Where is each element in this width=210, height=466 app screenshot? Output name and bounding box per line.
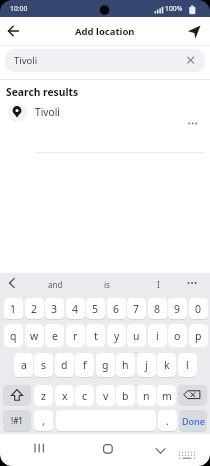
button[interactable] bbox=[176, 446, 198, 464]
staticText: Done bbox=[182, 415, 205, 427]
staticText: 5 bbox=[92, 302, 99, 316]
button[interactable]: m bbox=[157, 385, 176, 406]
staticText: m bbox=[162, 389, 172, 403]
staticText: u bbox=[133, 329, 140, 343]
staticText: 1 bbox=[10, 302, 17, 316]
button[interactable]: is bbox=[84, 274, 130, 294]
staticText: f bbox=[83, 358, 87, 372]
button[interactable]: a bbox=[14, 353, 33, 377]
staticText: s bbox=[41, 358, 47, 372]
staticText: w bbox=[30, 329, 39, 343]
button[interactable]: n bbox=[137, 385, 156, 406]
button[interactable]: d bbox=[55, 353, 74, 377]
button[interactable]: j bbox=[137, 353, 156, 377]
staticText: 10:00 bbox=[10, 4, 28, 13]
staticText: 0 bbox=[195, 302, 202, 316]
button[interactable] bbox=[96, 436, 120, 460]
button[interactable]: !#1 bbox=[3, 410, 31, 431]
button[interactable]: and bbox=[26, 274, 84, 294]
staticText: and bbox=[48, 279, 63, 290]
staticText: n bbox=[143, 389, 150, 403]
button[interactable]: s bbox=[34, 353, 53, 377]
staticText: !#1 bbox=[11, 415, 23, 426]
button[interactable]: Tivoli bbox=[0, 101, 210, 131]
button[interactable]: 3 bbox=[45, 298, 64, 319]
button[interactable]: w bbox=[25, 324, 44, 347]
button[interactable]: y bbox=[107, 324, 126, 347]
staticText: Add location bbox=[75, 25, 135, 38]
staticText: Tivoli bbox=[14, 54, 38, 67]
button[interactable] bbox=[178, 385, 207, 406]
button[interactable]: 7 bbox=[127, 298, 146, 319]
button[interactable] bbox=[2, 275, 20, 293]
button[interactable]: 8 bbox=[148, 298, 167, 319]
button[interactable]: g bbox=[96, 353, 115, 377]
staticText: a bbox=[21, 358, 27, 372]
staticText: e bbox=[52, 329, 58, 343]
button[interactable]: Tivoli bbox=[5, 49, 205, 72]
button[interactable] bbox=[2, 24, 26, 40]
button[interactable]: x bbox=[55, 385, 74, 406]
staticText: g bbox=[102, 358, 109, 372]
button[interactable]: h bbox=[116, 353, 135, 377]
button[interactable]: k bbox=[157, 353, 176, 377]
button[interactable] bbox=[27, 436, 51, 460]
staticText: l bbox=[186, 358, 189, 372]
staticText: 2 bbox=[31, 302, 38, 316]
button[interactable]: t bbox=[86, 324, 105, 347]
button[interactable]: e bbox=[45, 324, 64, 347]
button[interactable]: 6 bbox=[107, 298, 126, 319]
button[interactable]: . bbox=[158, 410, 177, 431]
staticText: 4 bbox=[72, 302, 79, 316]
staticText: I bbox=[157, 279, 160, 290]
staticText: 9 bbox=[174, 302, 181, 316]
staticText: , bbox=[42, 414, 45, 428]
staticText: is bbox=[104, 279, 110, 290]
staticText: v bbox=[103, 389, 109, 403]
staticText: 7 bbox=[133, 302, 140, 316]
button[interactable]: 5 bbox=[86, 298, 105, 319]
staticText: b bbox=[122, 389, 129, 403]
button[interactable]: c bbox=[75, 385, 94, 406]
button[interactable]: b bbox=[116, 385, 135, 406]
staticText: i bbox=[156, 329, 159, 343]
staticText: 3 bbox=[51, 302, 58, 316]
button[interactable]: v bbox=[96, 385, 115, 406]
button[interactable]: 1 bbox=[4, 298, 23, 319]
staticText: k bbox=[164, 358, 170, 372]
staticText: z bbox=[41, 389, 46, 403]
button[interactable]: 0 bbox=[189, 298, 208, 319]
staticText: c bbox=[82, 389, 88, 403]
button[interactable]: o bbox=[168, 324, 187, 347]
button[interactable]: , bbox=[34, 410, 53, 431]
button[interactable]: I bbox=[134, 274, 182, 294]
button[interactable]: z bbox=[34, 385, 53, 406]
button[interactable]: p bbox=[189, 324, 208, 347]
staticText: Search results bbox=[6, 85, 79, 99]
button[interactable]: l bbox=[178, 353, 197, 377]
staticText: x bbox=[62, 389, 68, 403]
button[interactable] bbox=[184, 24, 206, 40]
button[interactable]: 4 bbox=[66, 298, 85, 319]
button[interactable] bbox=[149, 436, 173, 460]
staticText: y bbox=[114, 329, 120, 343]
button[interactable]: 2 bbox=[25, 298, 44, 319]
staticText: t bbox=[94, 329, 98, 343]
button[interactable]: Done bbox=[179, 410, 207, 431]
staticText: h bbox=[122, 358, 129, 372]
staticText: q bbox=[10, 329, 17, 343]
button[interactable]: u bbox=[127, 324, 146, 347]
staticText: r bbox=[73, 329, 78, 343]
button[interactable]: f bbox=[75, 353, 94, 377]
button[interactable] bbox=[183, 53, 198, 68]
button[interactable] bbox=[3, 385, 31, 406]
button[interactable]: r bbox=[66, 324, 85, 347]
staticText: d bbox=[61, 358, 68, 372]
button[interactable]: i bbox=[148, 324, 167, 347]
button[interactable]: 9 bbox=[168, 298, 187, 319]
staticText: p bbox=[195, 329, 202, 343]
button[interactable] bbox=[183, 275, 201, 293]
button[interactable]: q bbox=[4, 324, 23, 347]
staticText: 6 bbox=[113, 302, 120, 316]
